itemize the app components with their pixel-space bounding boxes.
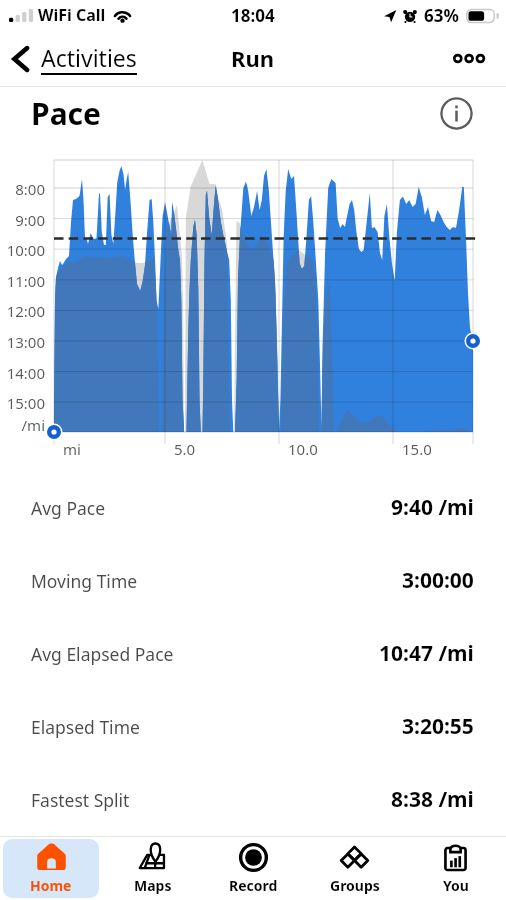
staticText: 63% (424, 4, 459, 27)
button[interactable]: Avg Pace (0, 471, 506, 544)
staticText: 13:00 (0, 332, 45, 352)
staticText: Activities (41, 42, 137, 73)
button[interactable]: Maps (105, 839, 200, 898)
staticText: Pace (31, 93, 101, 134)
button[interactable]: Avg Elapsed Pace (0, 617, 506, 690)
staticText: 10:00 (0, 240, 45, 260)
staticText: WiFi Call (38, 4, 106, 26)
staticText: Maps (134, 876, 172, 895)
button[interactable]: Groups (307, 839, 402, 898)
staticText: Elapsed Time (31, 715, 140, 739)
button[interactable]: You (408, 839, 503, 898)
staticText: 11:00 (0, 271, 45, 291)
staticText: 15:00 (0, 393, 45, 413)
staticText: mi (63, 439, 81, 459)
staticText: 8:00 (0, 179, 45, 199)
staticText: You (443, 876, 469, 895)
button[interactable]: Record (206, 839, 301, 898)
staticText: 3:20:55 (402, 712, 474, 741)
button[interactable]: More options (437, 41, 506, 76)
staticText: 8:38 /mi (391, 785, 474, 814)
staticText: Avg Elapsed Pace (31, 642, 174, 666)
button[interactable]: Activities (0, 42, 145, 75)
button[interactable]: Elapsed Time (0, 690, 506, 763)
staticText: /mi (0, 415, 45, 435)
staticText: 14:00 (0, 363, 45, 383)
staticText: 9:40 /mi (391, 493, 474, 522)
staticText: 12:00 (0, 301, 45, 321)
staticText: Fastest Split (31, 788, 130, 812)
staticText: 10:47 /mi (379, 639, 474, 668)
button[interactable]: Moving Time (0, 544, 506, 617)
button[interactable]: Home (3, 839, 99, 898)
staticText: 3:00:00 (402, 566, 474, 595)
button[interactable]: Fastest Split (0, 763, 506, 836)
staticText: 15.0 (402, 439, 432, 459)
staticText: 9:00 (0, 210, 45, 230)
button[interactable]: Info (440, 97, 473, 130)
staticText: 10.0 (288, 439, 318, 459)
staticText: Record (229, 876, 278, 895)
staticText: Moving Time (31, 569, 138, 593)
staticText: 5.0 (174, 439, 196, 459)
staticText: 18:04 (231, 4, 275, 27)
staticText: Avg Pace (31, 496, 106, 520)
staticText: Run (231, 43, 275, 73)
staticText: Home (30, 876, 72, 895)
staticText: Groups (330, 876, 380, 895)
